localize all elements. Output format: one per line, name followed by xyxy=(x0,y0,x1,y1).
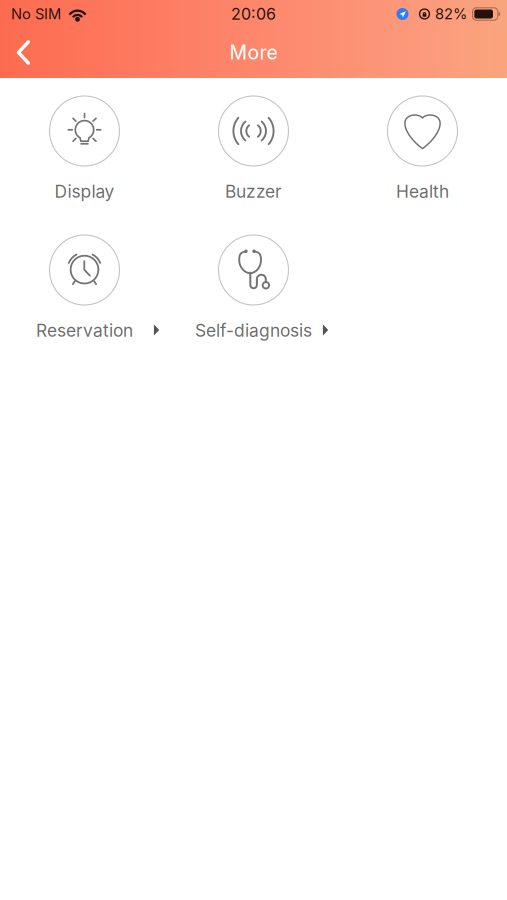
staticText: 20:06 xyxy=(231,4,276,24)
button[interactable]: Buzzer xyxy=(169,96,338,201)
button[interactable]: Self-diagnosis xyxy=(169,235,338,340)
button[interactable]: Health xyxy=(338,96,507,201)
button[interactable]: Back xyxy=(0,27,52,77)
staticText: More xyxy=(229,41,277,64)
staticText: Reservation xyxy=(36,320,133,341)
staticText: Buzzer xyxy=(225,181,282,202)
staticText: No SIM xyxy=(11,5,61,23)
button[interactable]: Reservation xyxy=(0,235,169,340)
staticText: Self-diagnosis xyxy=(195,320,312,341)
staticText: 82% xyxy=(435,5,467,23)
button[interactable]: Display xyxy=(0,96,169,201)
staticText: Health xyxy=(396,181,449,202)
staticText: Display xyxy=(54,181,114,202)
